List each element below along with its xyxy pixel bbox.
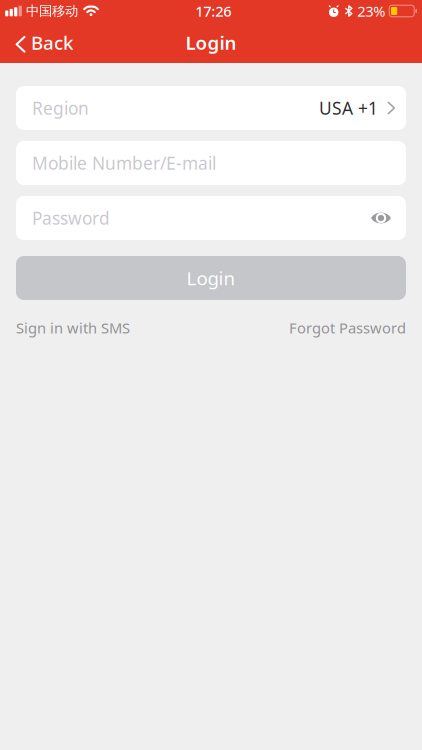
button[interactable]: Sign in with SMS (16, 318, 130, 337)
button[interactable]: Region (16, 86, 406, 130)
button[interactable]: Login (16, 256, 406, 300)
staticText: Region (32, 96, 89, 119)
button[interactable]: Forgot Password (289, 318, 406, 337)
staticText: Back (31, 30, 73, 55)
staticText: Forgot Password (289, 318, 406, 337)
staticText: Login (185, 30, 236, 55)
staticText: USA +1 (319, 96, 378, 119)
staticText: Password (32, 206, 110, 229)
staticText: 23% (357, 1, 385, 21)
staticText: Mobile Number/E-mail (32, 151, 216, 174)
button[interactable]: Show password (366, 203, 396, 233)
button[interactable]: Back (0, 22, 85, 63)
staticText: Sign in with SMS (16, 318, 130, 337)
staticText: 中国移动 (26, 3, 78, 19)
staticText: 17:26 (195, 1, 231, 21)
staticText: Login (186, 266, 235, 290)
